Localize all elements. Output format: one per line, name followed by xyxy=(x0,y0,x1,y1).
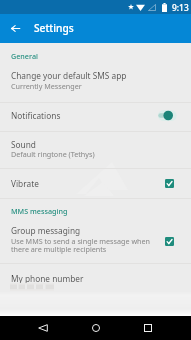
button[interactable] xyxy=(0,64,191,96)
button[interactable] xyxy=(0,132,191,168)
button[interactable]: Recent apps xyxy=(126,316,169,340)
button[interactable] xyxy=(0,169,191,198)
button[interactable]: Back xyxy=(0,14,31,43)
staticText: Sound xyxy=(11,139,36,150)
staticText: Settings xyxy=(34,21,74,35)
button[interactable] xyxy=(0,219,191,262)
button[interactable] xyxy=(0,44,191,64)
button[interactable] xyxy=(0,102,191,131)
staticText: Group messaging xyxy=(11,225,81,236)
staticText: Vibrate xyxy=(11,178,39,189)
button[interactable] xyxy=(0,198,191,219)
staticText: Notifications xyxy=(11,110,61,121)
staticText: 9:13 xyxy=(172,2,189,13)
button[interactable]: Home xyxy=(74,316,117,340)
staticText: My phone number xyxy=(11,273,84,284)
button[interactable] xyxy=(0,263,191,297)
button[interactable]: Back xyxy=(21,316,64,340)
staticText: Use MMS to send a single message when xyxy=(11,236,150,246)
staticText: Currently Messenger xyxy=(11,81,82,91)
staticText: General xyxy=(11,51,38,61)
staticText: Default ringtone (Tethys) xyxy=(11,149,95,159)
staticText: Change your default SMS app xyxy=(11,70,127,81)
staticText: there are multiple recipients xyxy=(11,244,107,254)
staticText: MMS messaging xyxy=(11,206,68,216)
